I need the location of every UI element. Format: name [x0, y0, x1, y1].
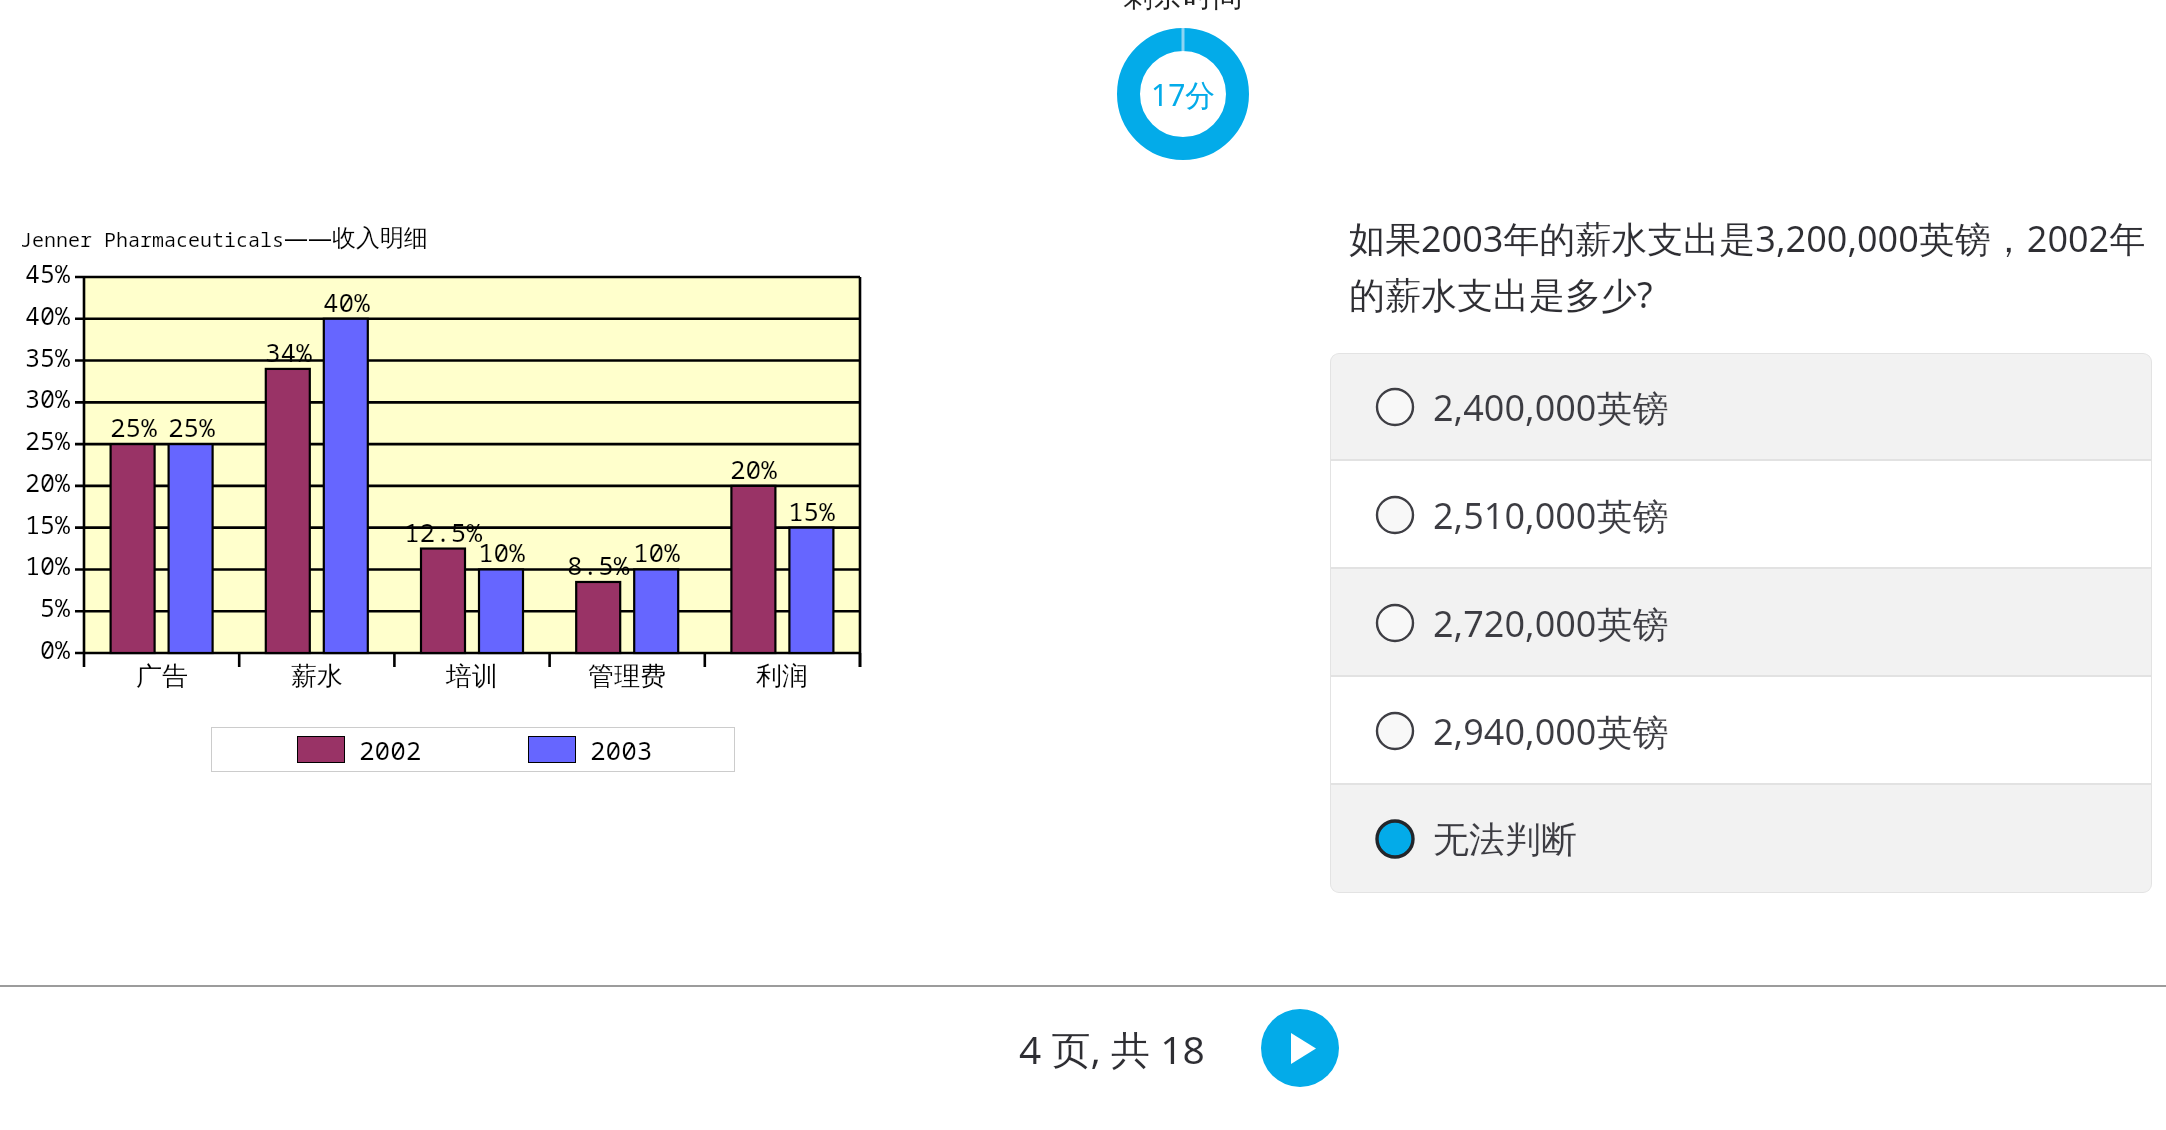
staticText: 10% [633, 534, 680, 569]
staticText: 管理费 [588, 660, 666, 693]
staticText: 20% [25, 465, 71, 499]
staticText: 15% [788, 493, 835, 528]
staticText: 2002 [359, 732, 422, 767]
staticText: 8.5% [567, 547, 630, 582]
staticText: 10% [478, 534, 525, 569]
staticText: 培训 [446, 660, 498, 693]
staticText: 2,510,000英镑 [1433, 491, 1669, 540]
staticText: 15% [25, 507, 71, 541]
staticText: 2,720,000英镑 [1433, 599, 1669, 648]
staticText: Jenner Pharmaceuticals [20, 226, 284, 253]
staticText: 2,400,000英镑 [1433, 383, 1669, 432]
staticText: ——收入明细 [284, 220, 428, 253]
staticText: 剩余时间 [1123, 0, 1243, 15]
button[interactable]: 2,720,000英镑 [1330, 569, 2152, 677]
staticText: 25% [168, 409, 215, 444]
staticText: 40% [25, 298, 71, 332]
button[interactable]: 2,400,000英镑 [1330, 353, 2152, 461]
staticText: 40% [323, 284, 370, 319]
staticText: 2003 [590, 732, 653, 767]
staticText: 10% [25, 548, 71, 582]
staticText: 无法判断 [1433, 817, 1577, 862]
button[interactable]: 2,940,000英镑 [1330, 677, 2152, 785]
staticText: 45% [25, 256, 71, 290]
staticText: 薪水 [291, 660, 343, 693]
staticText: 如果2003年的薪水支出是3,200,000英镑，2002年的薪水支出是多少? [1349, 214, 2149, 318]
staticText: 2,940,000英镑 [1433, 707, 1669, 756]
staticText: 0% [40, 632, 71, 666]
staticText: 广告 [136, 660, 188, 693]
staticText: 30% [25, 381, 71, 415]
button[interactable]: Next page [1261, 1009, 1339, 1087]
staticText: 25% [25, 423, 71, 457]
staticText: 利润 [756, 660, 808, 693]
staticText: 35% [25, 340, 71, 374]
button[interactable]: 2,510,000英镑 [1330, 461, 2152, 569]
staticText: 5% [40, 590, 71, 624]
staticText: 34% [265, 334, 312, 369]
staticText: 20% [730, 451, 777, 486]
button[interactable]: 无法判断 [1330, 785, 2152, 893]
staticText: 12.5% [404, 514, 483, 549]
staticText: 25% [110, 409, 157, 444]
staticText: 4 页, 共 18 [1019, 1022, 1205, 1075]
staticText: 17分 [1151, 74, 1216, 115]
